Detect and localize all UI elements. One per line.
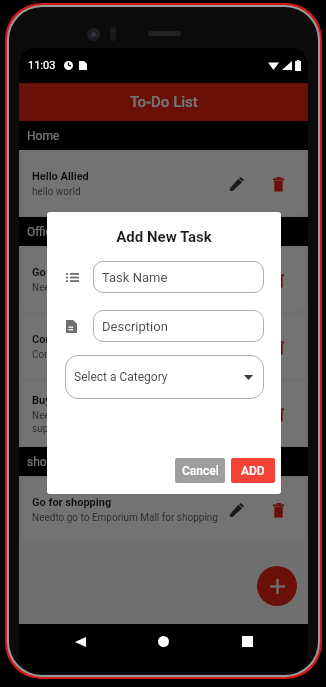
staticText: Complete the given work before 5pm bbox=[32, 349, 196, 361]
button[interactable]: Task Name bbox=[93, 261, 264, 293]
staticText: Cancel bbox=[182, 464, 219, 478]
staticText: Task Name bbox=[102, 270, 168, 285]
button[interactable]: Complete work bbox=[22, 315, 305, 378]
button[interactable]: ADD bbox=[231, 458, 275, 483]
staticText: Description bbox=[102, 319, 168, 334]
staticText: Office bbox=[27, 225, 59, 239]
staticText: Go to office bbox=[32, 266, 90, 279]
button[interactable]: Buy groceries bbox=[22, 382, 305, 445]
button[interactable]: Delete task bbox=[265, 334, 291, 360]
button[interactable]: Recent apps bbox=[228, 624, 266, 659]
button[interactable]: Go to office bbox=[22, 248, 305, 311]
button[interactable]: Home bbox=[144, 624, 182, 659]
button[interactable]: Delete task bbox=[265, 401, 291, 427]
staticText: Complete work bbox=[32, 333, 107, 346]
staticText: Go for shopping bbox=[32, 496, 112, 509]
staticText: Buy groceries bbox=[32, 394, 101, 407]
staticText: 11:03 bbox=[28, 59, 56, 72]
button[interactable]: Add new task bbox=[257, 566, 297, 606]
staticText: Needto go to Emporium Mall for shopping bbox=[32, 512, 218, 524]
button[interactable]: Back bbox=[61, 624, 99, 659]
staticText: Hello Allied bbox=[32, 170, 89, 183]
button[interactable]: Cancel bbox=[175, 458, 225, 483]
button[interactable]: Delete task bbox=[265, 171, 291, 197]
staticText: Home bbox=[27, 129, 60, 143]
button[interactable]: Select a Category bbox=[65, 355, 264, 399]
button[interactable]: Go for shopping bbox=[22, 478, 305, 541]
button[interactable]: Description bbox=[93, 310, 264, 342]
staticText: Add New Task bbox=[47, 228, 281, 246]
staticText: shopping bbox=[27, 455, 77, 469]
button[interactable]: Delete task bbox=[265, 267, 291, 293]
button[interactable]: Edit task bbox=[224, 267, 250, 293]
staticText: hello world bbox=[32, 186, 81, 198]
staticText: To-Do List bbox=[130, 93, 198, 111]
button[interactable]: Hello Allied bbox=[22, 152, 305, 215]
staticText: Need to buy milk bread and other supplie… bbox=[32, 410, 218, 434]
button[interactable]: Delete task bbox=[265, 497, 291, 523]
staticText: ADD bbox=[241, 464, 265, 478]
button[interactable]: Edit task bbox=[224, 171, 250, 197]
button[interactable]: Edit task bbox=[224, 334, 250, 360]
button[interactable]: Edit task bbox=[224, 497, 250, 523]
staticText: Select a Category bbox=[74, 370, 168, 384]
staticText: Need to reach at 9am bbox=[32, 282, 128, 294]
